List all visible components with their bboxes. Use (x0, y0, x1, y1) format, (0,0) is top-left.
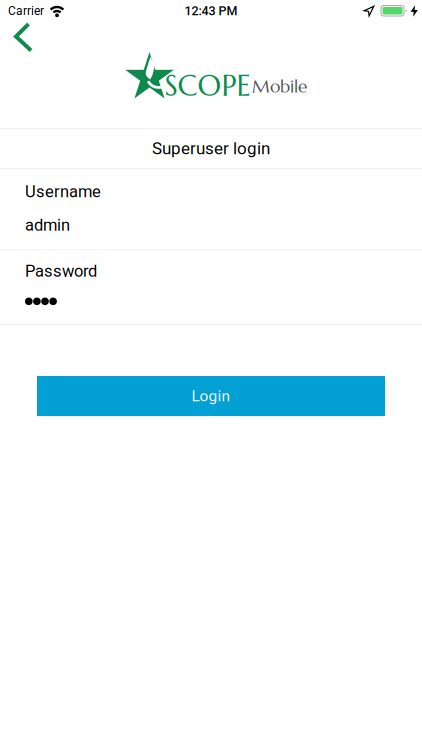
staticText: 12:43 PM (184, 4, 237, 18)
staticText: Carrier (8, 4, 44, 18)
staticText: Mobile (252, 76, 307, 97)
button[interactable]: Password (0, 250, 422, 324)
staticText: admin (25, 215, 70, 235)
button[interactable]: Login (37, 376, 385, 416)
staticText: Password (25, 261, 97, 281)
staticText: SCOPE (164, 67, 250, 104)
staticText: Login (191, 387, 230, 405)
staticText: Superuser login (152, 138, 270, 158)
staticText: Username (25, 182, 101, 201)
button[interactable]: Username (0, 169, 422, 249)
button[interactable]: Back (14, 22, 34, 52)
